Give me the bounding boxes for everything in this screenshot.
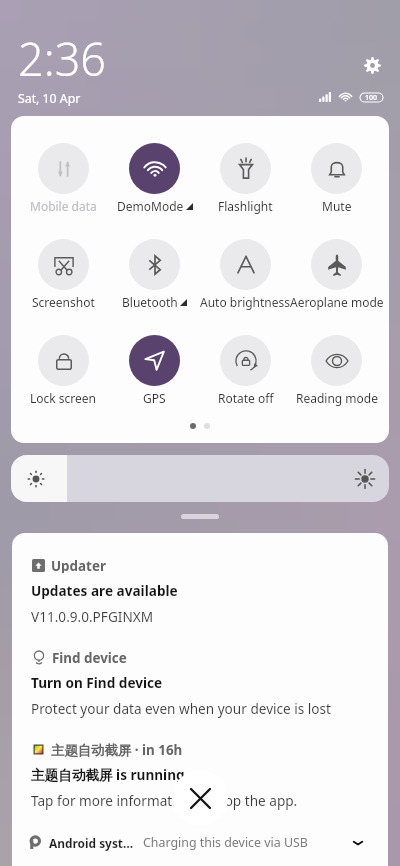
staticText: Find device <box>52 649 127 665</box>
staticText: Android syst… <box>49 835 134 851</box>
button[interactable]: Mute <box>291 143 382 214</box>
staticText: Mute <box>322 198 352 214</box>
staticText: V11.0.9.0.PFGINXM <box>31 607 154 626</box>
staticText: Charging this device via USB <box>143 834 352 851</box>
button[interactable]: Mobile data <box>18 143 109 214</box>
staticText: Reading mode <box>296 390 378 406</box>
staticText: Mobile data <box>30 198 97 214</box>
staticText: Tap for more information or stop the app… <box>31 791 298 810</box>
button[interactable]: Close <box>172 770 228 826</box>
button[interactable]: Flashlight <box>200 143 291 214</box>
staticText: Screenshot <box>32 294 95 310</box>
button[interactable]: Rotate off <box>200 335 291 406</box>
button[interactable]: Aeroplane mode <box>291 239 382 310</box>
staticText: Lock screen <box>30 390 97 406</box>
button[interactable]: Reading mode <box>291 335 382 406</box>
staticText: Protect your data even when your device … <box>31 699 331 718</box>
staticText: Aeroplane mode <box>290 294 384 310</box>
staticText: Turn on Find device <box>31 673 163 692</box>
staticText: Sat, 10 Apr <box>18 90 81 107</box>
staticText: 2:36 <box>18 28 107 89</box>
staticText: 主题自动截屏 is running <box>31 765 185 784</box>
button[interactable]: Settings <box>355 48 389 82</box>
button[interactable]: Brightness <box>11 455 389 502</box>
button[interactable]: Lock screen <box>18 335 109 406</box>
button[interactable]: Android syst… <box>12 828 388 866</box>
staticText: GPS <box>143 390 166 406</box>
button[interactable]: Auto brightness <box>200 239 291 310</box>
staticText: 主题自动截屏 · in 16h <box>51 741 183 757</box>
button[interactable]: GPS <box>109 335 200 406</box>
staticText: Bluetooth <box>122 294 178 310</box>
staticText: Flashlight <box>218 198 273 214</box>
button[interactable]: Bluetooth <box>109 239 200 310</box>
staticText: 100 <box>365 93 378 102</box>
button[interactable]: Screenshot <box>18 239 109 310</box>
staticText: Rotate off <box>218 390 274 406</box>
staticText: Auto brightness <box>200 294 291 310</box>
staticText: DemoMode <box>117 198 184 214</box>
button[interactable]: DemoMode <box>109 143 200 214</box>
staticText: Updater <box>51 557 106 573</box>
staticText: Updates are available <box>31 581 178 600</box>
